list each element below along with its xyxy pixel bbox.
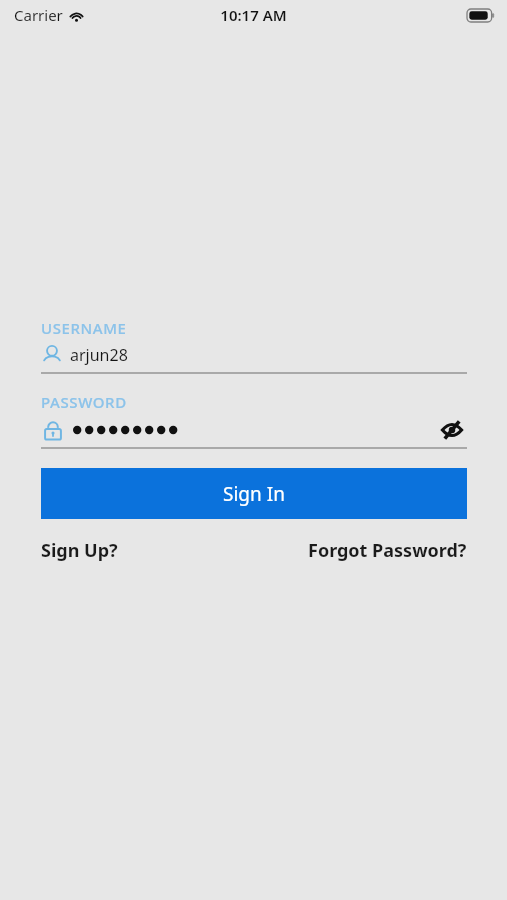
staticText: Sign Up? — [41, 538, 118, 563]
button[interactable]: Forgot Password? — [308, 538, 467, 563]
button[interactable]: Sign In — [41, 468, 467, 519]
button[interactable]: Show password — [437, 415, 467, 445]
staticText: USERNAME — [41, 318, 127, 338]
staticText: 10:17 AM — [220, 5, 287, 25]
button[interactable]: Sign Up? — [41, 538, 118, 563]
staticText: arjun28 — [70, 344, 128, 366]
staticText: Carrier — [14, 5, 63, 25]
button[interactable] — [41, 418, 437, 442]
button[interactable]: arjun28 — [41, 342, 467, 368]
staticText: Sign In — [223, 481, 285, 507]
staticText: PASSWORD — [41, 392, 127, 412]
staticText: Forgot Password? — [308, 538, 467, 563]
